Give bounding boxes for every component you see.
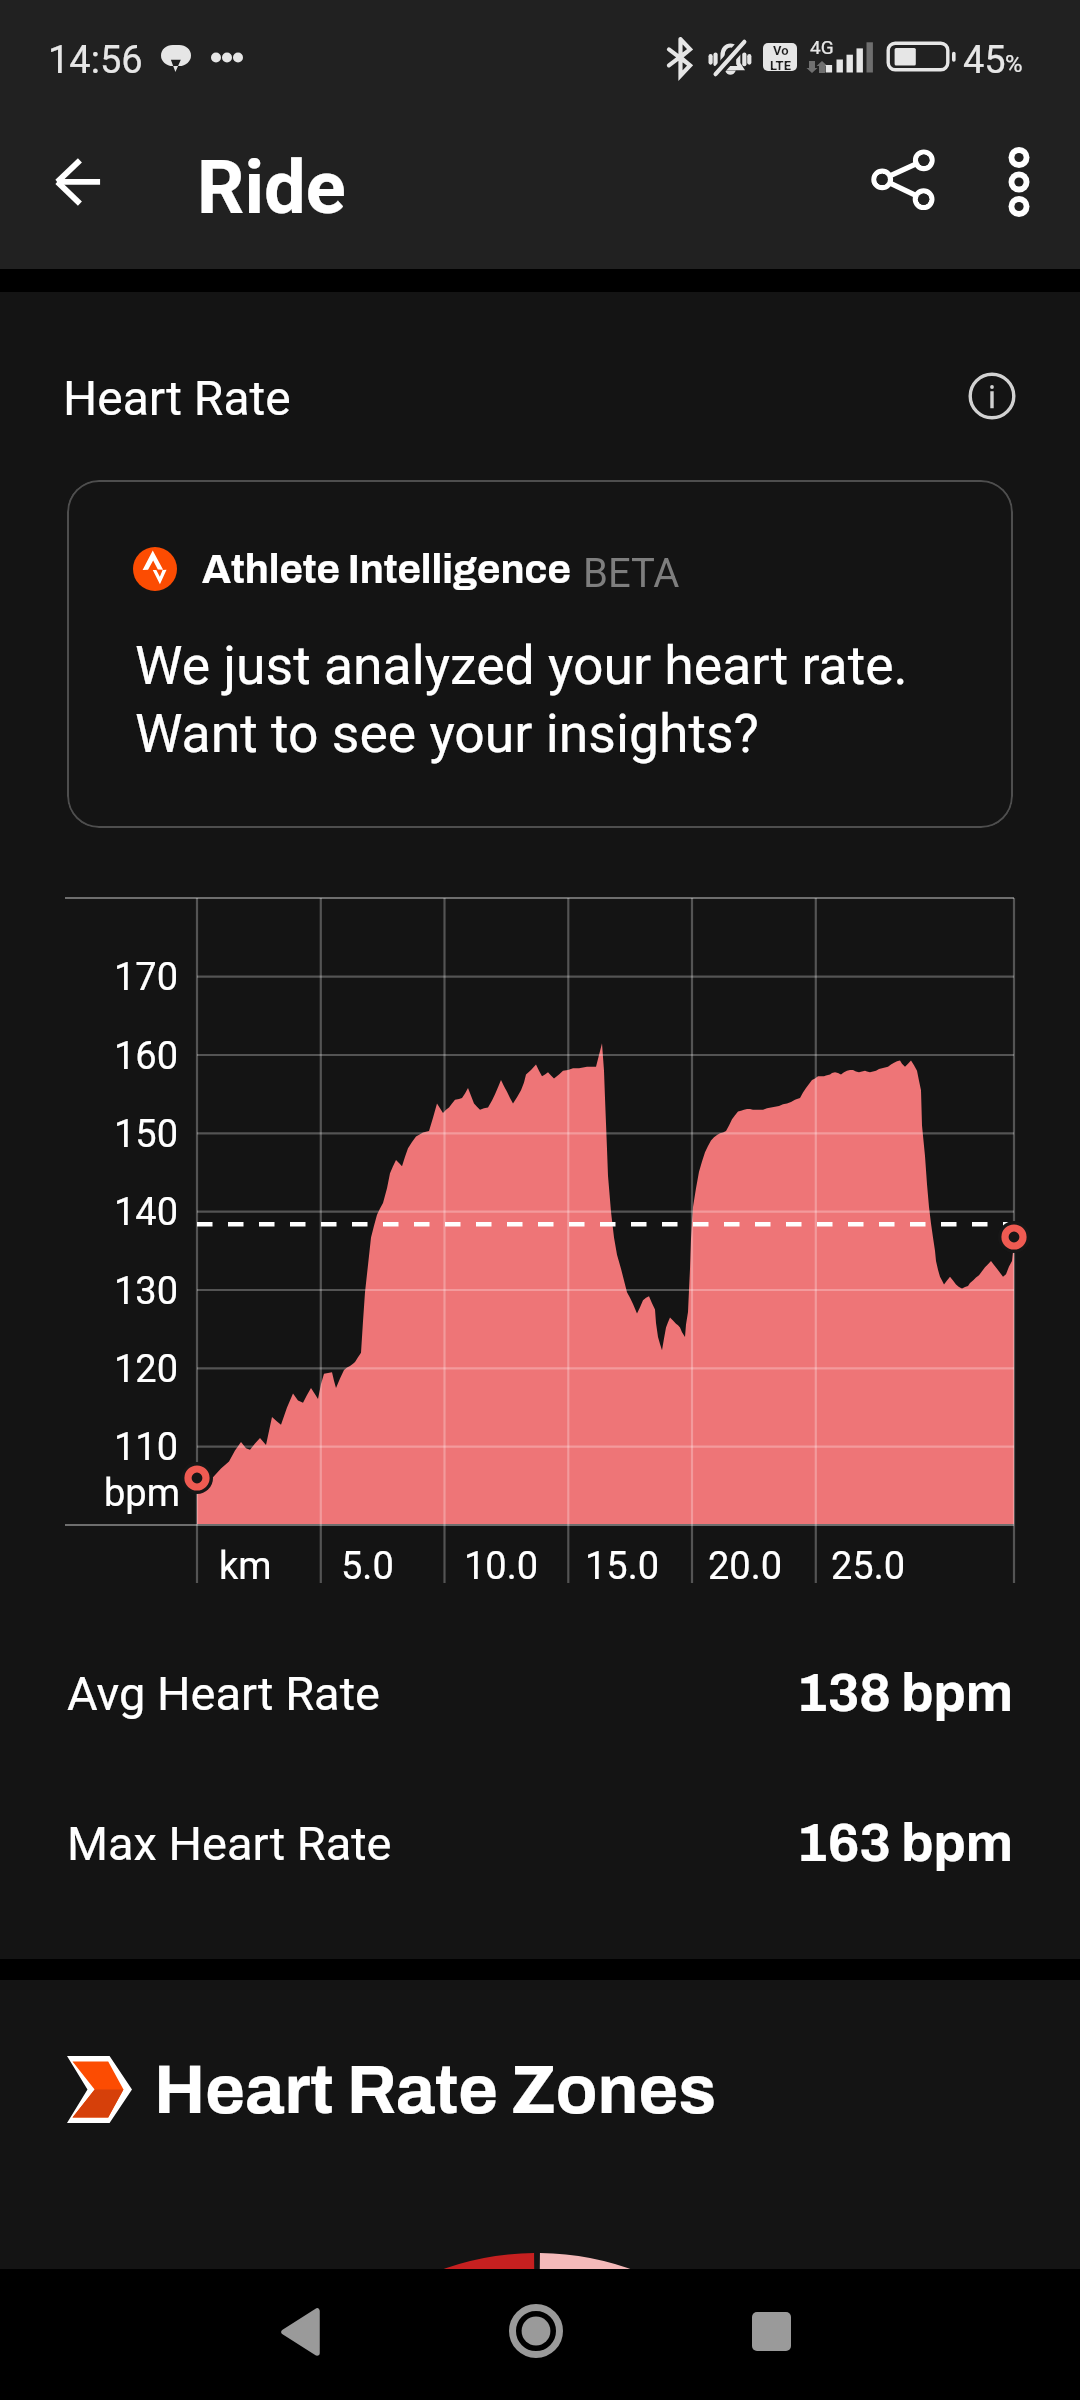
button[interactable]: Athlete Intelligence [67, 480, 1013, 828]
staticText: Heart Rate [63, 370, 291, 426]
staticText: 4G [810, 36, 834, 58]
staticText: 15.0 [585, 1544, 660, 1589]
staticText: 160 [0, 1034, 178, 1079]
staticText: LTE [770, 58, 791, 71]
staticText: 10.0 [464, 1544, 539, 1589]
button[interactable]: Recent apps [711, 2279, 831, 2384]
staticText: 25.0 [831, 1544, 906, 1589]
staticText: 120 [0, 1347, 178, 1392]
staticText: We just analyzed your heart rate. Want t… [135, 634, 908, 765]
button[interactable]: Info [948, 352, 1036, 440]
staticText: BETA [583, 550, 680, 597]
staticText: 45 [963, 38, 1006, 83]
staticText: Ride [197, 144, 346, 231]
staticText: 20.0 [708, 1544, 783, 1589]
staticText: bpm [0, 1471, 180, 1516]
staticText: 140 [0, 1190, 178, 1235]
staticText: km [219, 1544, 272, 1589]
staticText: 130 [0, 1269, 178, 1314]
button[interactable]: Back [240, 2279, 360, 2384]
staticText: 5.0 [341, 1544, 394, 1589]
staticText: 14:56 [48, 38, 143, 83]
button[interactable]: Home [476, 2273, 596, 2388]
staticText: Athlete Intelligence [202, 548, 571, 592]
staticText: 150 [0, 1112, 178, 1157]
button[interactable]: Heart Rate Zones [0, 2020, 1080, 2158]
staticText: % [1005, 50, 1023, 78]
staticText: Avg Heart Rate [67, 1666, 380, 1721]
button[interactable]: More options [969, 132, 1069, 232]
staticText: 163 bpm [0, 1814, 1013, 1872]
button[interactable]: Share [852, 131, 952, 231]
staticText: 138 bpm [0, 1664, 1013, 1722]
button[interactable]: Back [28, 131, 128, 231]
staticText: Vo [773, 43, 789, 58]
staticText: Max Heart Rate [67, 1816, 392, 1871]
staticText: 170 [0, 955, 178, 1000]
staticText: Heart Rate Zones [154, 2053, 716, 2127]
staticText: 110 [0, 1425, 178, 1470]
